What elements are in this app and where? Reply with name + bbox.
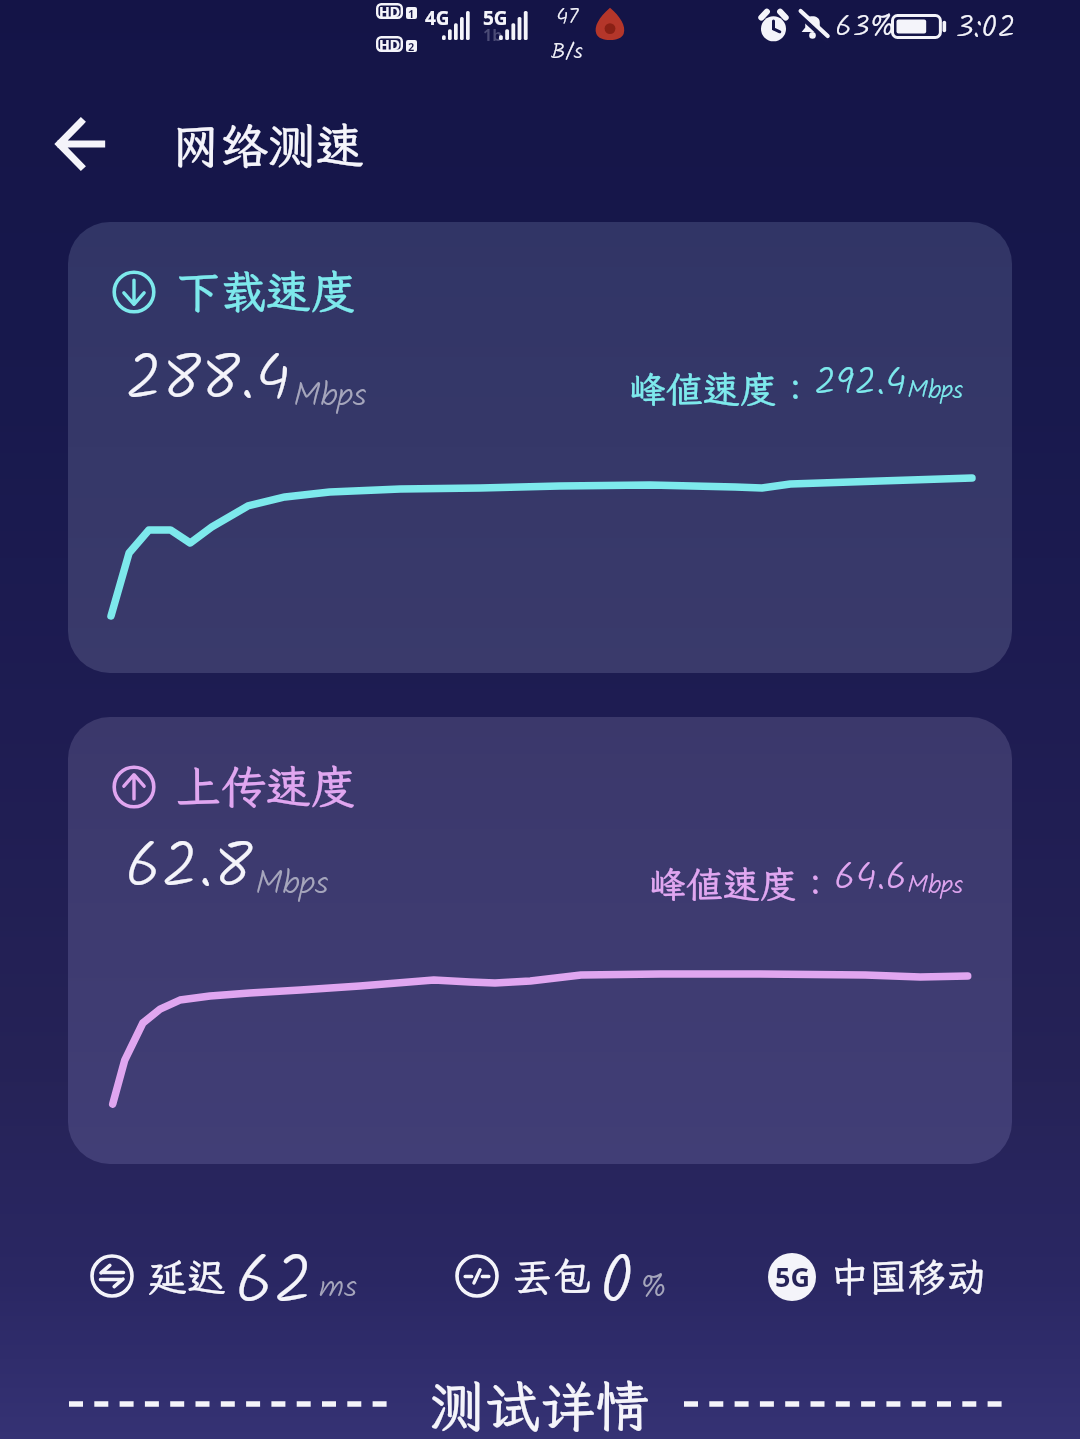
staticText: 2	[408, 40, 415, 51]
staticText: 下载速度	[176, 262, 357, 321]
staticText: 288.4	[125, 330, 291, 432]
staticText: 峰值速度：	[649, 860, 834, 909]
staticText: 62.8	[125, 818, 253, 920]
staticText: ms	[319, 1263, 357, 1314]
staticText: 4G	[425, 5, 450, 31]
button[interactable]: 丢包	[455, 1236, 667, 1316]
staticText: 5G	[775, 1258, 810, 1295]
staticText: B/s	[551, 35, 583, 64]
button[interactable]: 5G	[768, 1251, 987, 1302]
staticText: 0	[600, 1230, 634, 1310]
staticText: Mbps	[907, 370, 964, 411]
staticText: 网络测速	[172, 113, 365, 176]
staticText: 62	[235, 1230, 313, 1310]
staticText: Mbps	[293, 370, 367, 424]
staticText: 丢包	[513, 1251, 592, 1302]
button[interactable]: 下载速度	[68, 222, 1012, 673]
staticText: HD	[379, 35, 400, 51]
staticText: 1b	[483, 24, 503, 46]
staticText: HD	[379, 2, 400, 18]
button[interactable]: 延迟	[90, 1236, 357, 1316]
button[interactable]: Back	[45, 109, 115, 179]
staticText: 3:02	[955, 3, 1016, 54]
staticText: Mbps	[907, 865, 964, 906]
staticText: 292.4	[814, 354, 907, 415]
button[interactable]: 上传速度	[68, 717, 1012, 1164]
staticText: Mbps	[255, 858, 329, 912]
staticText: 延迟	[148, 1251, 227, 1302]
staticText: 5G	[483, 5, 508, 31]
staticText: 1	[408, 7, 415, 18]
staticText: 峰值速度：	[629, 365, 814, 414]
staticText: 47	[556, 0, 579, 35]
staticText: 64.6	[834, 849, 907, 910]
button[interactable]: 测试详情	[0, 1369, 1080, 1439]
staticText: 测试详情	[430, 1369, 651, 1439]
staticText: 上传速度	[176, 757, 357, 816]
staticText: %	[640, 1263, 667, 1314]
staticText: 63%	[835, 4, 895, 52]
staticText: 中国移动	[830, 1251, 987, 1302]
